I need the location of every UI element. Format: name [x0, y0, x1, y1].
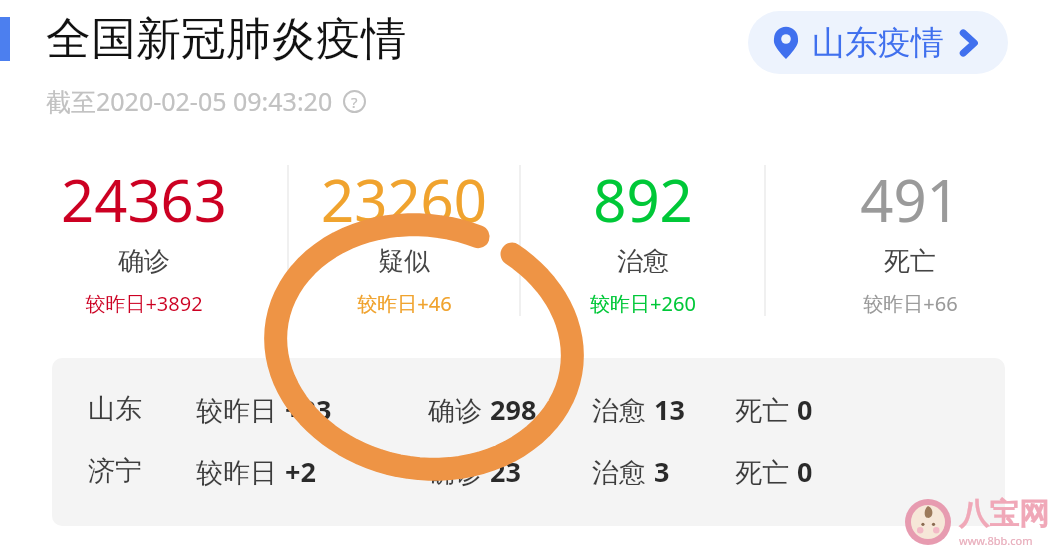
- staticText: 23: [490, 453, 521, 490]
- staticText: 八宝网: [959, 495, 1049, 533]
- staticText: 13: [654, 391, 685, 428]
- staticText: 298: [490, 391, 537, 428]
- button[interactable]: 说明: [343, 90, 366, 113]
- staticText: 确诊: [428, 453, 490, 490]
- staticText: ?: [351, 92, 358, 112]
- staticText: +2: [285, 453, 316, 490]
- staticText: 死亡: [884, 245, 936, 278]
- staticText: 确诊: [118, 245, 170, 278]
- staticText: 死亡: [735, 453, 797, 490]
- staticText: 较昨日: [196, 391, 285, 428]
- button[interactable]: 山东: [52, 358, 1005, 526]
- button[interactable]: 山东疫情: [748, 11, 1008, 74]
- staticText: 济宁: [88, 454, 142, 488]
- staticText: 全国新冠肺炎疫情: [46, 11, 406, 68]
- staticText: 较昨日+260: [590, 290, 696, 317]
- staticText: 确诊: [428, 391, 490, 428]
- staticText: 3: [654, 453, 670, 490]
- staticText: 较昨日+66: [863, 290, 958, 317]
- staticText: 0: [797, 453, 813, 490]
- staticText: 山东疫情: [812, 22, 944, 64]
- staticText: 治愈: [592, 453, 654, 490]
- staticText: 治愈: [617, 245, 669, 278]
- staticText: 较昨日+46: [357, 290, 452, 317]
- staticText: 较昨日+3892: [85, 290, 203, 317]
- staticText: 疑似: [378, 245, 430, 278]
- staticText: 0: [797, 391, 813, 428]
- staticText: 23260: [321, 160, 487, 239]
- staticText: 死亡: [735, 391, 797, 428]
- staticText: 892: [593, 160, 693, 239]
- staticText: 截至2020-02-05 09:43:20: [46, 84, 333, 118]
- staticText: 山东: [88, 392, 142, 426]
- staticText: www.8bb.com: [959, 533, 1033, 548]
- staticText: +23: [285, 391, 332, 428]
- staticText: 治愈: [592, 391, 654, 428]
- staticText: 较昨日: [196, 453, 285, 490]
- staticText: 24363: [61, 160, 227, 239]
- staticText: 491: [860, 160, 960, 239]
